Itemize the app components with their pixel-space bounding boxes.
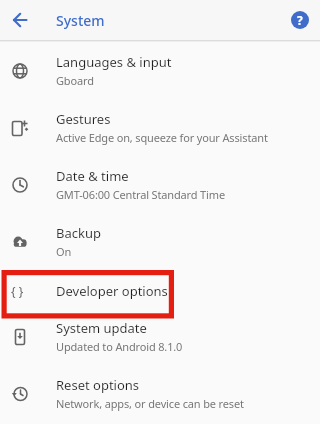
staticText: Developer options <box>56 282 168 300</box>
staticText: Active Edge on, squeeze for your Assista… <box>56 130 268 145</box>
button[interactable] <box>11 11 29 29</box>
staticText: ? <box>297 12 303 28</box>
button[interactable]: System update <box>0 308 320 365</box>
staticText: GMT-06:00 Central Standard Time <box>56 187 225 202</box>
staticText: Languages & input <box>56 53 172 71</box>
staticText: Gboard <box>56 73 94 88</box>
staticText: System <box>56 11 105 30</box>
staticText: Updated to Android 8.1.0 <box>56 339 183 354</box>
staticText: Date & time <box>56 167 129 185</box>
button[interactable]: Languages & input <box>0 42 320 99</box>
button[interactable]: ? <box>291 11 309 29</box>
button[interactable]: Date & time <box>0 156 320 213</box>
button[interactable]: Gestures <box>0 99 320 156</box>
staticText: Backup <box>56 224 101 242</box>
button[interactable]: Reset options <box>0 365 320 422</box>
staticText: System update <box>56 319 147 337</box>
staticText: { } <box>11 283 24 299</box>
staticText: Reset options <box>56 376 140 394</box>
staticText: Network, apps, or device can be reset <box>56 396 244 411</box>
button[interactable]: Backup <box>0 213 320 270</box>
staticText: Gestures <box>56 110 111 128</box>
staticText: On <box>56 244 72 259</box>
button[interactable]: { } <box>0 272 320 310</box>
